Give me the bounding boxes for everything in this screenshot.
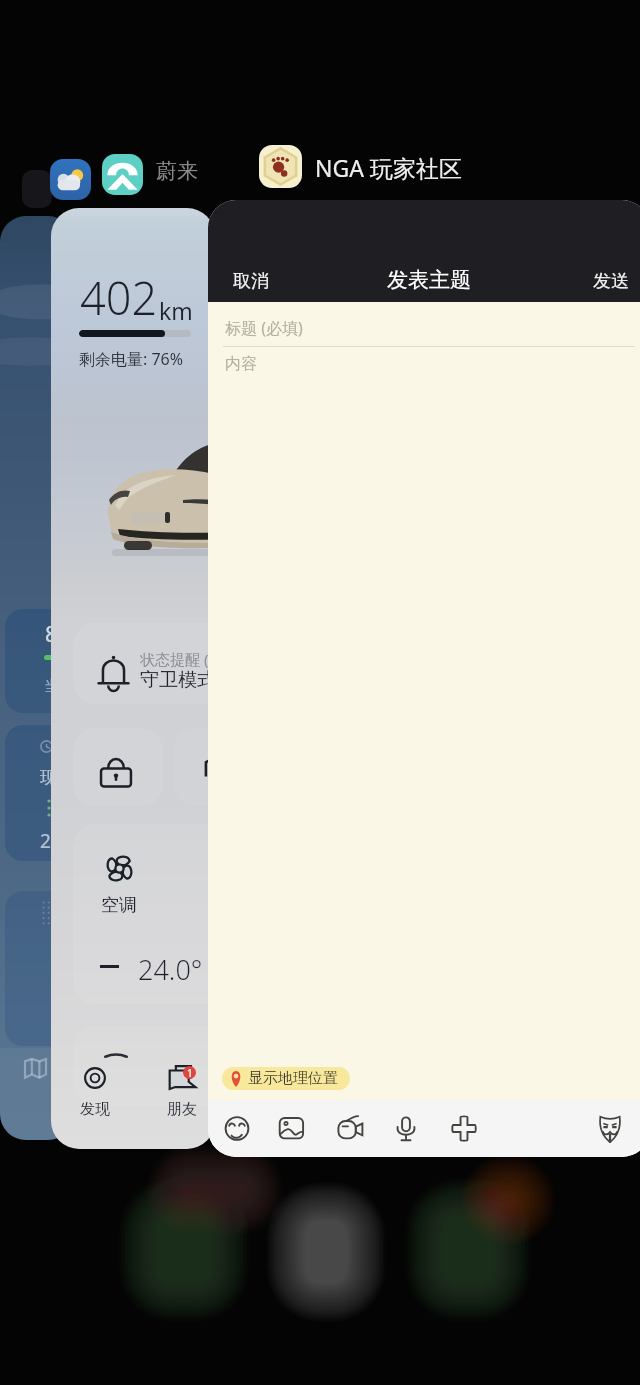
button[interactable]: 402 (51, 208, 215, 1149)
staticText: 发表主题 (387, 267, 471, 293)
staticText: 1 (187, 1066, 193, 1079)
button[interactable]: Weather (50, 159, 91, 200)
button[interactable]: 发送 (593, 270, 629, 293)
button[interactable]: Add (449, 1113, 479, 1144)
button[interactable]: Video (336, 1113, 366, 1144)
staticText: 剩余电量: 76% (79, 348, 184, 370)
staticText: 发现 (80, 1100, 110, 1119)
staticText: 空调 (101, 894, 137, 917)
button[interactable]: 取消 (233, 270, 269, 293)
button[interactable]: NGA (259, 145, 302, 188)
staticText: 当 (44, 677, 59, 696)
staticText: NGA 玩家社区 (315, 152, 462, 183)
button[interactable]: Anonymous (599, 1114, 621, 1142)
button[interactable]: Image (277, 1113, 307, 1144)
staticText: 标题 (必填) (225, 317, 303, 339)
staticText: 2 (40, 828, 51, 854)
staticText: 现 (40, 767, 57, 788)
button[interactable]: Trunk (173, 728, 215, 806)
button[interactable]: Map (24, 1058, 47, 1081)
button[interactable]: 显示地理位置 (222, 1067, 350, 1090)
button[interactable]: 8 (0, 216, 74, 1140)
staticText: 内容 (225, 354, 257, 374)
staticText: 显示地理位置 (248, 1069, 338, 1088)
staticText: 状态提醒 (1) (140, 649, 215, 669)
button[interactable]: NIO (102, 154, 143, 195)
staticText: 24.0° (138, 951, 203, 988)
staticText: 8 (45, 618, 58, 648)
staticText: 守卫模式 (140, 668, 215, 692)
button[interactable]: Lock (73, 728, 163, 806)
button[interactable]: 取消 (208, 200, 640, 1157)
button[interactable]: Voice (391, 1113, 421, 1144)
button[interactable]: 朋友 (163, 1059, 201, 1119)
staticText: 朋友 (167, 1100, 197, 1119)
button[interactable]: 发现 (76, 1059, 114, 1119)
button[interactable]: 空调 (73, 824, 215, 1004)
button[interactable]: Emoji (222, 1113, 252, 1144)
button[interactable]: 状态提醒 (1) (73, 623, 215, 704)
staticText: 蔚来 (156, 158, 198, 184)
staticText: km (159, 295, 193, 326)
staticText: 402 (80, 267, 158, 328)
